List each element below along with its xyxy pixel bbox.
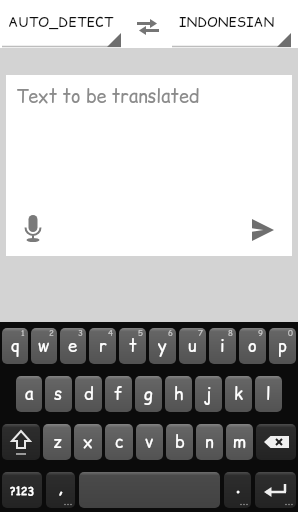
staticText: 7 <box>198 328 203 339</box>
button[interactable] <box>255 472 296 508</box>
staticText: y <box>158 335 167 358</box>
staticText: v <box>145 431 154 454</box>
staticText: AUTO_DETECT <box>8 12 114 32</box>
button[interactable]: INDONESIAN <box>171 0 292 48</box>
button[interactable]: Text to be translated <box>6 75 292 256</box>
staticText: o <box>248 335 257 358</box>
staticText: 8 <box>228 328 233 339</box>
button[interactable]: f <box>105 376 132 412</box>
button[interactable]: . <box>224 472 251 508</box>
staticText: 3 <box>78 328 83 339</box>
staticText: t <box>129 335 137 358</box>
staticText: 2 <box>49 328 54 339</box>
staticText: 4 <box>108 328 113 339</box>
staticText: h <box>174 383 184 406</box>
staticText: l <box>266 383 271 406</box>
button[interactable]: ?123 <box>2 472 42 508</box>
button[interactable]: o <box>239 328 266 364</box>
staticText: c <box>115 431 124 454</box>
button[interactable]: h <box>165 376 192 412</box>
staticText: INDONESIAN <box>179 13 275 32</box>
staticText: g <box>144 383 153 406</box>
staticText: 9 <box>258 328 263 339</box>
staticText: i <box>220 335 225 358</box>
button[interactable]: l <box>255 376 282 412</box>
button[interactable]: p <box>269 328 296 364</box>
button[interactable]: AUTO_DETECT <box>0 0 122 48</box>
button[interactable] <box>2 424 40 460</box>
button[interactable]: c <box>105 424 133 460</box>
button[interactable]: , <box>46 472 75 508</box>
staticText: ?123 <box>10 483 35 498</box>
button[interactable]: m <box>226 424 253 460</box>
staticText: r <box>99 335 107 358</box>
staticText: u <box>188 335 197 358</box>
staticText: 1 <box>21 328 25 339</box>
staticText: m <box>233 431 246 454</box>
button[interactable]: w <box>31 328 57 364</box>
staticText: e <box>68 335 78 358</box>
button[interactable]: v <box>136 424 163 460</box>
button[interactable]: u <box>179 328 206 364</box>
button[interactable] <box>133 11 167 43</box>
staticText: q <box>11 335 20 358</box>
button[interactable]: n <box>196 424 223 460</box>
button[interactable]: x <box>74 424 102 460</box>
button[interactable]: a <box>16 376 42 412</box>
staticText: . <box>236 476 240 498</box>
button[interactable] <box>19 214 47 248</box>
button[interactable]: t <box>119 328 146 364</box>
staticText: w <box>38 335 50 358</box>
button[interactable]: d <box>75 376 102 412</box>
button[interactable]: i <box>209 328 236 364</box>
staticText: a <box>25 383 34 406</box>
staticText: x <box>83 431 93 454</box>
staticText: d <box>84 383 94 406</box>
staticText: k <box>234 383 243 406</box>
staticText: Text to be translated <box>16 84 200 109</box>
button[interactable]: e <box>60 328 86 364</box>
staticText: b <box>175 431 185 454</box>
staticText: n <box>205 431 214 454</box>
button[interactable] <box>252 219 274 241</box>
staticText: s <box>54 383 63 406</box>
button[interactable]: j <box>195 376 222 412</box>
staticText: f <box>114 383 123 406</box>
button[interactable]: z <box>43 424 71 460</box>
staticText: , <box>58 476 63 498</box>
staticText: 0 <box>288 328 293 339</box>
staticText: z <box>53 431 62 454</box>
staticText: 5 <box>138 328 143 339</box>
button[interactable] <box>256 424 296 460</box>
button[interactable]: g <box>135 376 162 412</box>
staticText: 6 <box>168 328 173 339</box>
button[interactable]: y <box>149 328 176 364</box>
button[interactable]: s <box>45 376 72 412</box>
button[interactable]: b <box>166 424 193 460</box>
button[interactable]: q <box>2 328 28 364</box>
button[interactable]: r <box>89 328 116 364</box>
button[interactable] <box>79 472 220 508</box>
staticText: p <box>278 335 287 358</box>
staticText: j <box>205 383 212 406</box>
button[interactable]: k <box>225 376 252 412</box>
